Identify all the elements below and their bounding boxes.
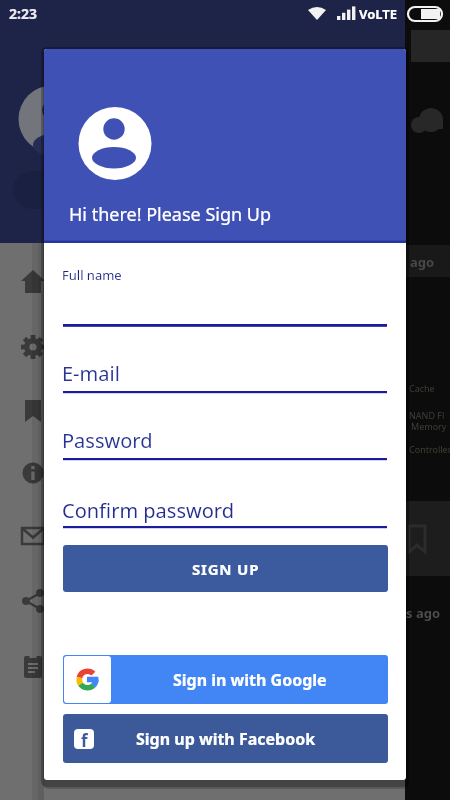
staticText: Confirm password [62,497,234,524]
staticText: Hi there! Please Sign Up [69,202,272,227]
staticText: Cache [409,382,435,394]
staticText: SIGN UP [192,559,260,579]
button[interactable]: Sign in with Google [63,655,388,704]
staticText: 2:23 [9,4,37,23]
staticText: Memory [411,420,447,432]
staticText: Controller [409,443,450,455]
button[interactable]: f [63,714,388,763]
staticText: Sign up with Facebook [136,728,316,750]
staticText: Password [62,427,153,454]
staticText: Sign in with Google [173,669,327,691]
staticText: NAND Fl [409,409,445,421]
staticText: s ago [406,604,441,622]
staticText: Full name [62,266,122,284]
staticText: f [81,729,88,749]
staticText: E-mail [62,360,120,387]
staticText: VoLTE [359,5,398,23]
staticText: ago [410,253,435,271]
button[interactable]: SIGN UP [63,545,388,592]
